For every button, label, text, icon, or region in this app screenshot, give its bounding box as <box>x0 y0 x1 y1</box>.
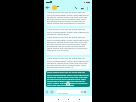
button[interactable]: More options <box>85 6 89 10</box>
button[interactable]: Message <box>56 90 87 94</box>
button[interactable]: Attach sticker <box>50 90 54 94</box>
button[interactable]: Voice call <box>74 6 78 10</box>
button[interactable]: Profile photo <box>52 5 57 10</box>
button[interactable]: Back <box>56 97 61 102</box>
staticText: Nous avons tout mis en place afin de vou… <box>47 36 89 51</box>
staticText: Nous avons tout mis en place afin de vou… <box>47 28 89 35</box>
button[interactable]: Attach file <box>80 90 84 94</box>
button[interactable]: Emoji <box>45 90 49 94</box>
button[interactable]: Camera <box>83 90 87 94</box>
staticText: Nous avons tout mis en place afin de vou… <box>47 71 89 86</box>
staticText: Nous avons tout mis en place afin de vou… <box>47 57 89 68</box>
button[interactable]: Nous avons tout mis en place afin de vou… <box>46 71 90 87</box>
button[interactable]: Scroll to bottom <box>66 82 70 86</box>
staticText: Message <box>58 91 68 94</box>
button[interactable]: Recent apps <box>77 97 82 102</box>
button[interactable]: Nous avons tout mis en place afin de vou… <box>46 57 90 69</box>
button[interactable]: Back <box>45 5 50 10</box>
button[interactable]: Video call <box>80 6 84 10</box>
button[interactable]: Home <box>66 97 71 102</box>
button[interactable]: Nous avons tout mis en place afin de vou… <box>46 11 90 26</box>
button[interactable]: Nous avons tout mis en place afin de vou… <box>46 28 90 55</box>
staticText: Nous avons tout mis en place afin de vou… <box>47 11 89 24</box>
